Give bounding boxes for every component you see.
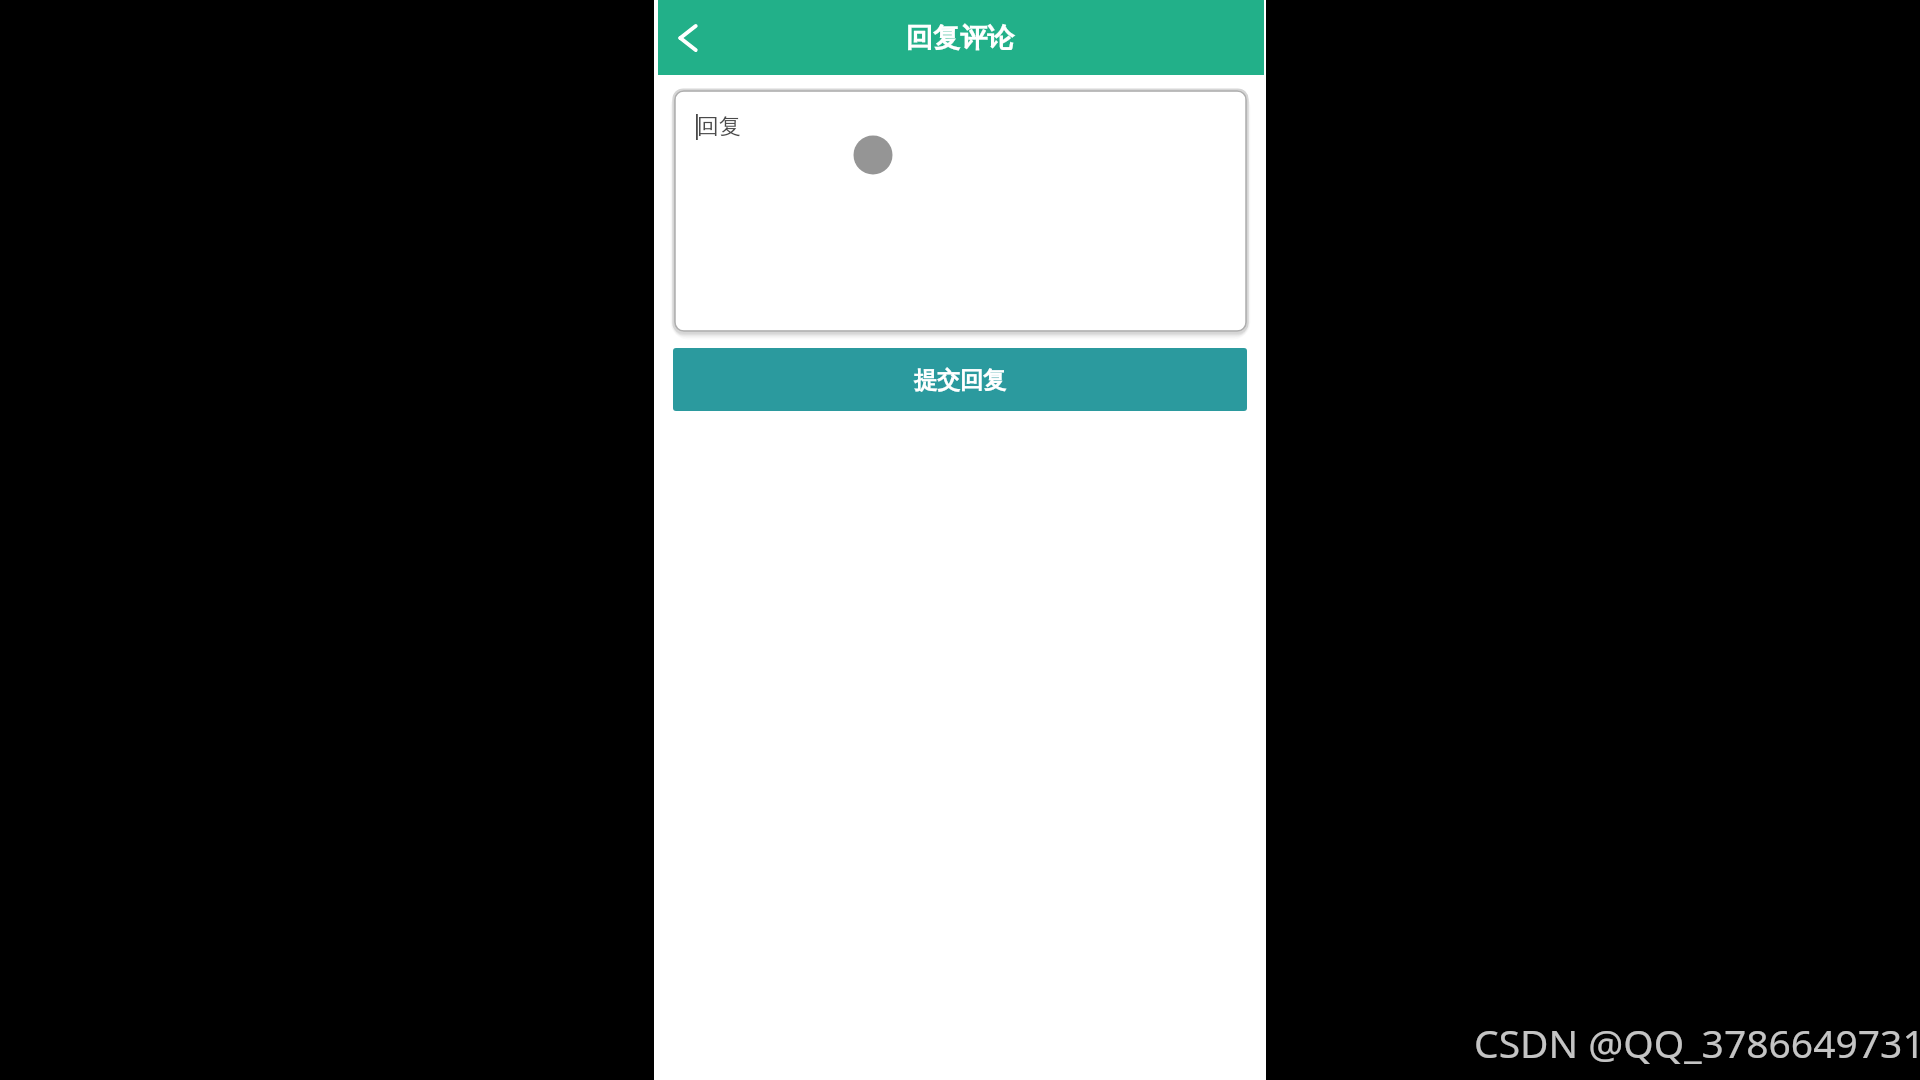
staticText: 回复评论	[906, 21, 1014, 55]
button[interactable]: 回复	[674, 90, 1247, 332]
button[interactable]: 提交回复	[673, 348, 1247, 411]
staticText: CSDN @QQ_3786649731	[1474, 1016, 1920, 1069]
staticText: 回复	[697, 113, 741, 141]
button[interactable]: Back	[668, 14, 716, 62]
staticText: 提交回复	[914, 366, 1006, 395]
